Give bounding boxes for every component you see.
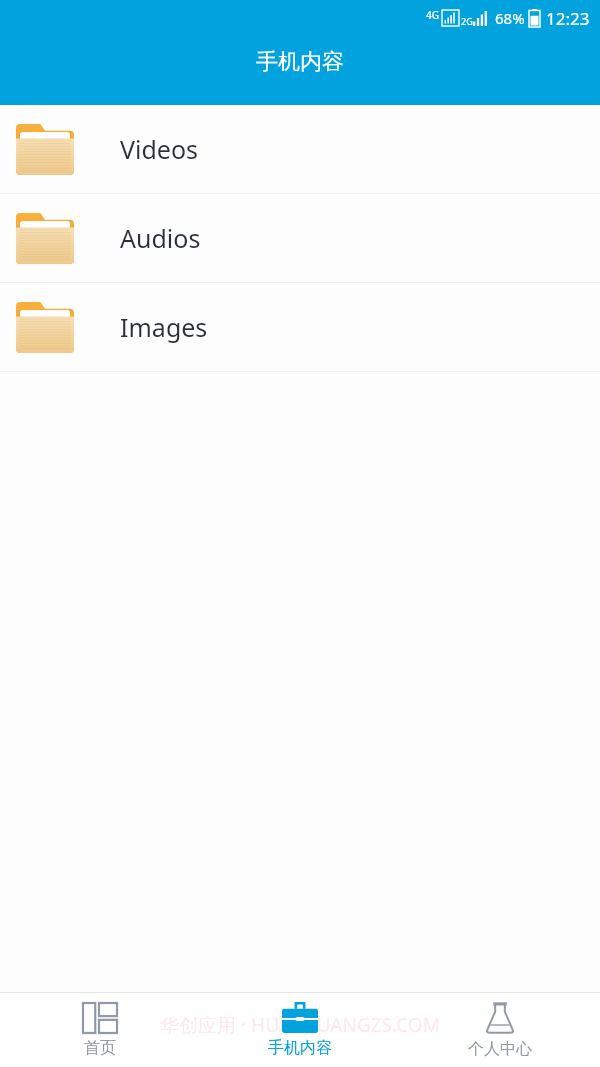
staticText: 2G: [461, 15, 473, 27]
staticText: 首页: [84, 1038, 116, 1058]
button[interactable]: Videos: [0, 105, 600, 193]
staticText: 个人中心: [468, 1039, 532, 1059]
staticText: Audios: [120, 221, 201, 255]
staticText: Images: [120, 310, 208, 344]
staticText: 华创应用 · HUACHUANGZS.COM: [160, 1012, 440, 1038]
staticText: 手机内容: [256, 48, 344, 76]
other: 首页: [83, 1003, 117, 1033]
staticText: 12:23: [546, 7, 590, 30]
button[interactable]: Images: [0, 283, 600, 371]
staticText: 4G: [426, 8, 439, 22]
other: 手机内容: [282, 1002, 318, 1033]
button[interactable]: 个人中心: [400, 993, 600, 1067]
other: 个人中心: [484, 1002, 516, 1034]
button[interactable]: Audios: [0, 194, 600, 282]
staticText: Videos: [120, 132, 199, 166]
button[interactable]: 首页: [0, 993, 200, 1067]
button[interactable]: 手机内容: [200, 993, 400, 1067]
staticText: 手机内容: [268, 1038, 332, 1058]
staticText: 68%: [495, 8, 525, 28]
